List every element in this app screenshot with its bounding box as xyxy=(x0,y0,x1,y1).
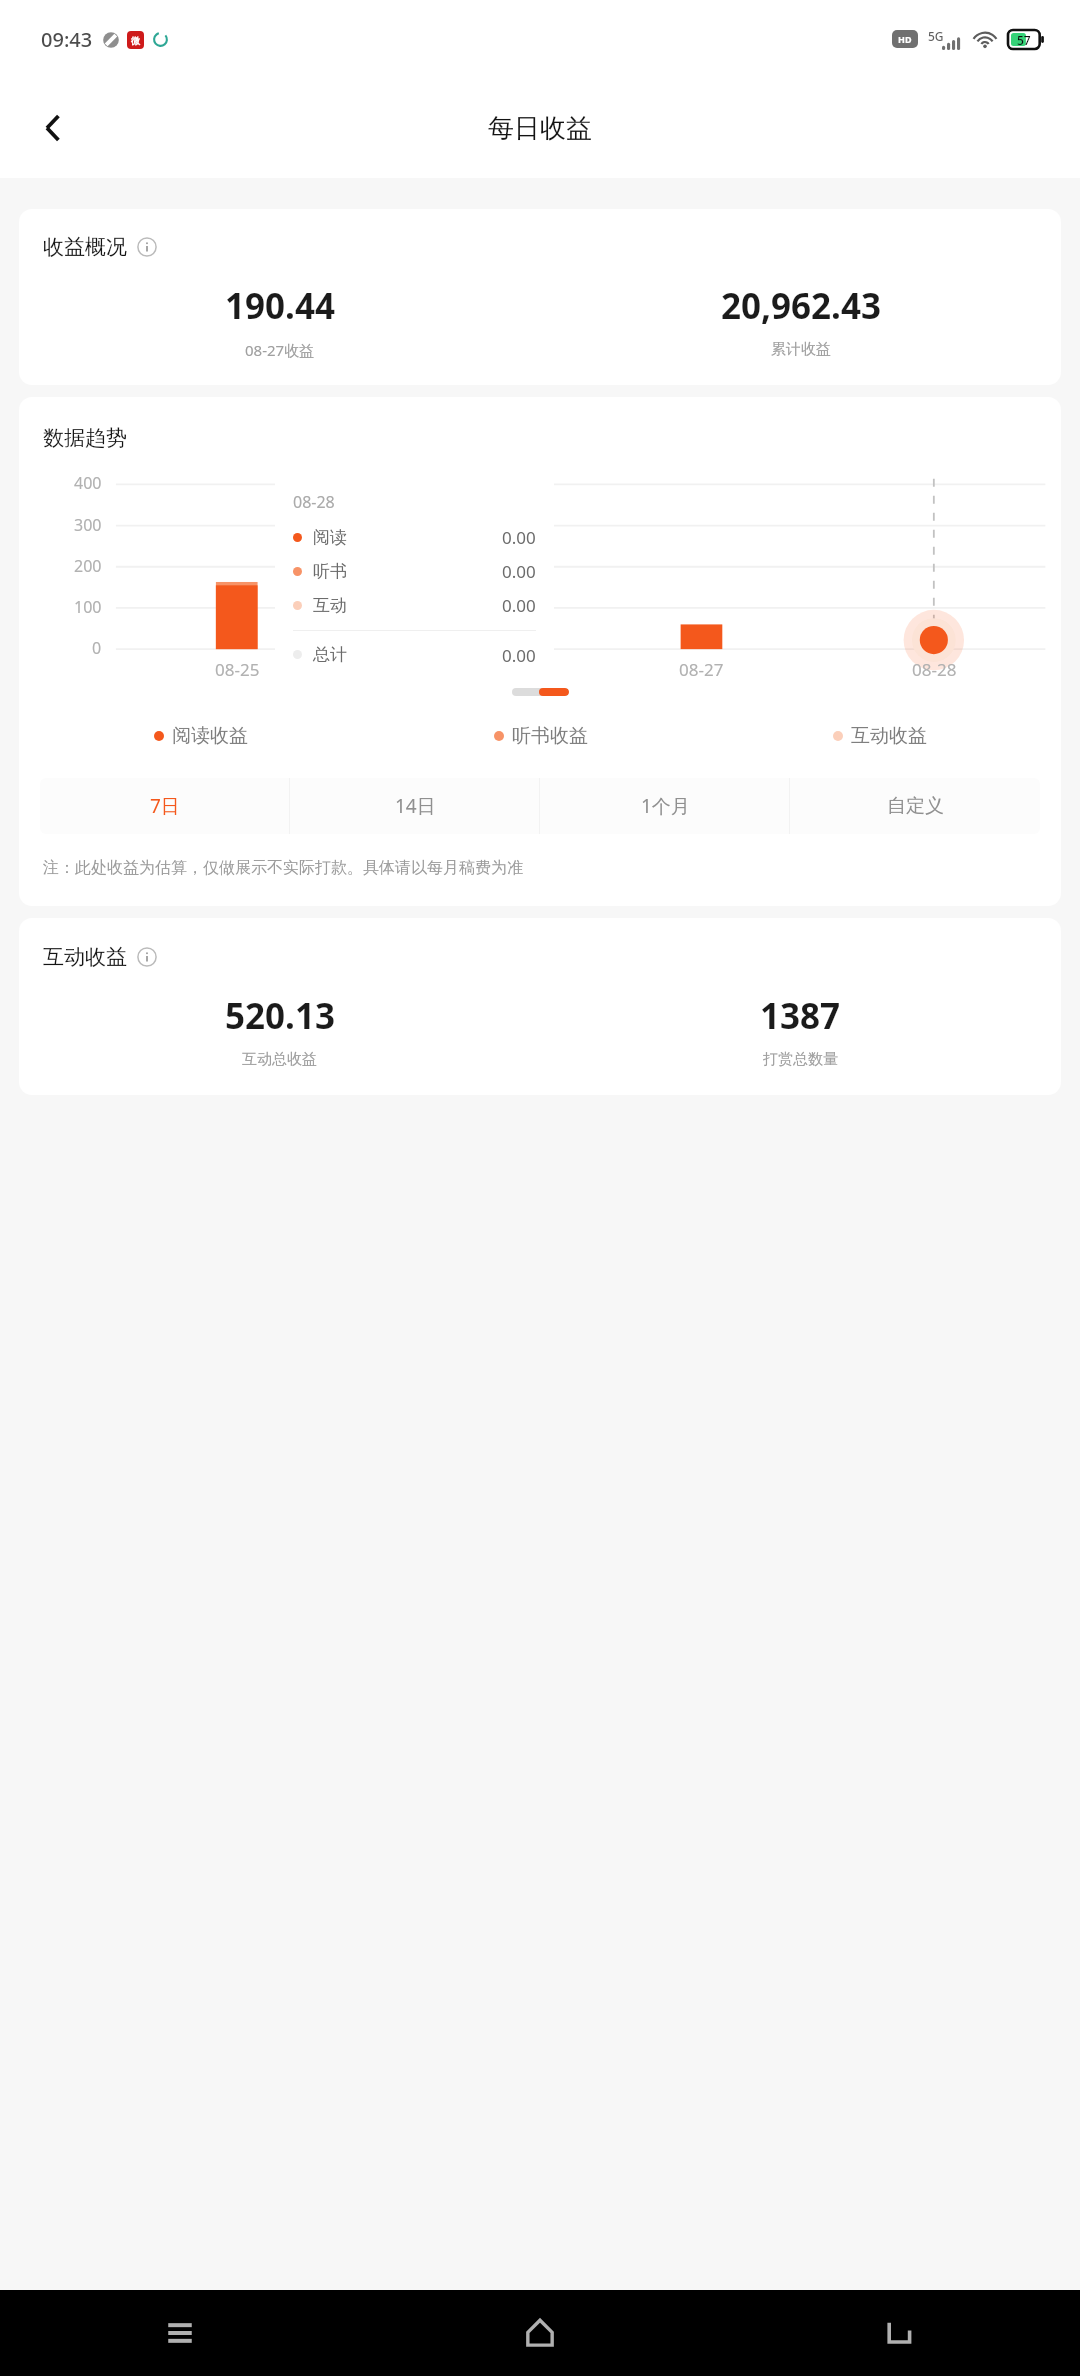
staticText: 微 xyxy=(131,35,140,46)
button[interactable]: 互动收益 xyxy=(19,918,1061,1095)
staticText: 5G xyxy=(928,28,944,44)
staticText: 08-28 xyxy=(912,658,957,681)
staticText: 听书 xyxy=(313,561,347,582)
button[interactable]: 7日 xyxy=(40,778,290,834)
staticText: 每日收益 xyxy=(488,112,592,145)
staticText: 互动收益 xyxy=(43,944,127,970)
staticText: 自定义 xyxy=(887,794,944,818)
staticText: 200 xyxy=(74,555,102,577)
staticText: 0.00 xyxy=(502,560,536,583)
button[interactable]: 自定义 xyxy=(790,778,1040,834)
button[interactable]: Back xyxy=(720,2290,1080,2376)
staticText: 0 xyxy=(92,637,102,659)
staticText: 听书收益 xyxy=(512,724,588,748)
button[interactable]: Back xyxy=(24,99,82,157)
staticText: 08-27 xyxy=(679,658,724,681)
staticText: 7日 xyxy=(150,793,180,819)
staticText: 累计收益 xyxy=(771,340,831,359)
button[interactable]: 14日 xyxy=(290,778,540,834)
staticText: 08-27收益 xyxy=(245,340,315,360)
staticText: 520.13 xyxy=(225,992,335,1040)
staticText: 14日 xyxy=(395,793,436,819)
staticText: 互动收益 xyxy=(851,724,927,748)
staticText: 互动 xyxy=(313,595,347,616)
staticText: 收益概况 xyxy=(43,234,127,260)
staticText: 0.00 xyxy=(502,594,536,617)
staticText: 打赏总数量 xyxy=(763,1050,838,1069)
button[interactable]: Recent apps xyxy=(0,2290,360,2376)
staticText: 57 xyxy=(1017,32,1031,48)
button[interactable]: 1个月 xyxy=(540,778,790,834)
staticText: 100 xyxy=(74,596,102,618)
staticText: 总计 xyxy=(313,644,347,665)
button[interactable]: 收益概况 xyxy=(19,209,1061,385)
staticText: 阅读收益 xyxy=(172,724,248,748)
staticText: 09:43 xyxy=(41,26,93,53)
staticText: 0.00 xyxy=(502,644,536,665)
staticText: 阅读 xyxy=(313,527,347,548)
button[interactable]: Home xyxy=(360,2290,720,2376)
staticText: 190.44 xyxy=(225,282,335,330)
staticText: 1387 xyxy=(760,992,841,1040)
staticText: 互动总收益 xyxy=(242,1050,317,1069)
staticText: 300 xyxy=(74,514,102,536)
staticText: 08-25 xyxy=(215,658,260,681)
staticText: HD xyxy=(898,33,912,45)
staticText: 数据趋势 xyxy=(43,425,127,451)
staticText: 1个月 xyxy=(641,793,690,819)
staticText: 注：此处收益为估算，仅做展示不实际打款。具体请以每月稿费为准 xyxy=(43,858,523,878)
staticText: 08-28 xyxy=(293,491,335,513)
staticText: 0.00 xyxy=(502,526,536,549)
staticText: 20,962.43 xyxy=(721,282,881,330)
staticText: 400 xyxy=(74,472,102,494)
